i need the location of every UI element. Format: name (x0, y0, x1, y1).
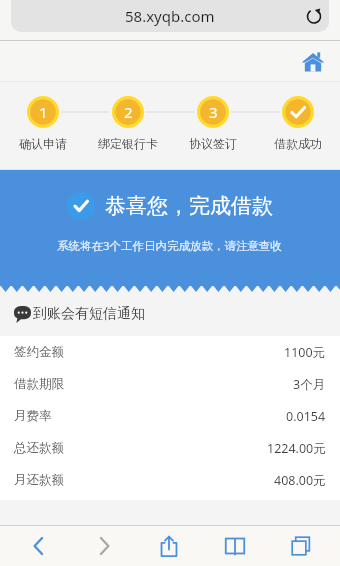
staticText: 3 (209, 102, 218, 122)
button[interactable]: 签约金额 (0, 336, 340, 368)
staticText: 月费率 (14, 408, 52, 424)
staticText: 1224.00元 (267, 440, 326, 457)
button[interactable]: Back (6, 525, 71, 566)
button[interactable]: 借款成功 (255, 96, 340, 151)
button[interactable]: Reload (299, 1, 329, 31)
staticText: 确认申请 (19, 136, 67, 151)
staticText: 1 (39, 102, 48, 122)
button[interactable]: Forward (71, 525, 136, 566)
staticText: 到账会有短信通知 (33, 305, 145, 323)
staticText: 借款成功 (274, 136, 322, 151)
staticText: 系统将在3个工作日内完成放款，请注意查收 (57, 238, 283, 254)
button[interactable]: Share (136, 525, 202, 566)
button[interactable]: 借款期限 (0, 368, 340, 400)
staticText: 绑定银行卡 (98, 136, 158, 151)
button[interactable]: 总还款额 (0, 432, 340, 464)
button[interactable]: 月还款额 (0, 464, 340, 496)
button[interactable]: Bookmarks (202, 525, 268, 566)
button[interactable]: 2 (85, 96, 170, 151)
staticText: 1100元 (284, 344, 326, 361)
button[interactable]: Tabs (268, 525, 334, 566)
button[interactable]: Home (296, 45, 330, 79)
button[interactable]: 3 (170, 96, 255, 151)
staticText: 借款期限 (14, 376, 64, 392)
button[interactable]: 58.xyqb.com (11, 0, 329, 32)
staticText: 签约金额 (14, 344, 64, 360)
staticText: 408.00元 (274, 472, 326, 489)
staticText: 0.0154 (286, 408, 326, 425)
staticText: 月还款额 (14, 472, 64, 488)
button[interactable]: 1 (0, 96, 85, 151)
staticText: 3个月 (293, 376, 326, 393)
staticText: 协议签订 (189, 136, 237, 151)
staticText: 恭喜您，完成借款 (105, 193, 273, 219)
staticText: 2 (124, 102, 133, 122)
button[interactable]: 月费率 (0, 400, 340, 432)
staticText: 58.xyqb.com (125, 6, 215, 26)
staticText: 总还款额 (14, 440, 64, 456)
